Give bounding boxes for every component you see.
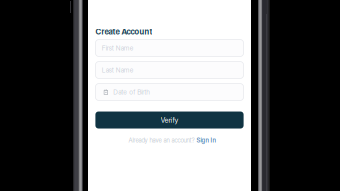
staticText: Last Name (102, 66, 134, 74)
button[interactable]: Sign In (194, 136, 217, 144)
staticText: Sign In (197, 136, 217, 144)
staticText: Create Account (95, 27, 152, 36)
button[interactable]: Date of Birth (95, 83, 244, 100)
staticText: First Name (102, 44, 134, 52)
staticText: Date of Birth (113, 88, 150, 96)
button[interactable]: Verify (95, 111, 244, 128)
button[interactable]: Last Name (95, 61, 244, 78)
staticText: Already have an account? (128, 136, 194, 144)
button[interactable]: First Name (95, 39, 244, 56)
staticText: Verify (160, 115, 178, 124)
